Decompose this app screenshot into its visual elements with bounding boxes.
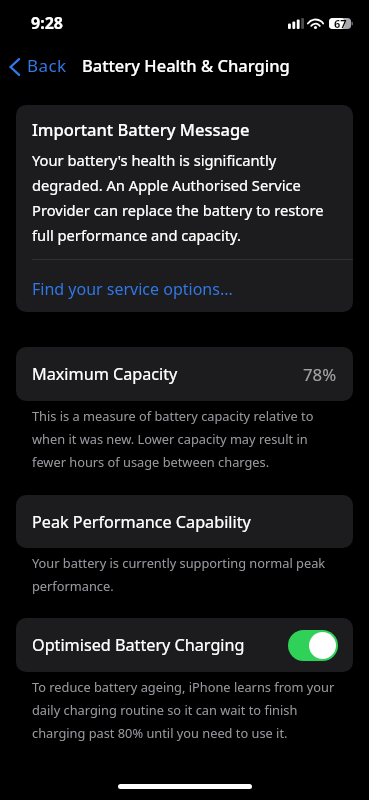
button[interactable]: Find your service options... — [16, 260, 353, 312]
button[interactable]: Optimised Battery Charging — [16, 618, 353, 672]
staticText: Important Battery Message — [32, 118, 250, 140]
button[interactable]: Peak Performance Capability — [16, 495, 353, 548]
staticText: Your battery's health is significantly d… — [32, 150, 337, 245]
staticText: Maximum Capacity — [32, 363, 178, 385]
staticText: Your battery is currently supporting nor… — [32, 554, 341, 594]
button[interactable]: Maximum Capacity — [16, 347, 353, 401]
staticText: 9:28 — [31, 12, 63, 34]
staticText: Battery Health & Charging — [82, 54, 290, 76]
staticText: Back — [27, 54, 67, 77]
staticText: 78% — [303, 363, 337, 386]
button[interactable]: Optimised Battery Charging toggle — [288, 630, 338, 661]
staticText: 67 — [334, 16, 347, 31]
staticText: Find your service options... — [32, 278, 233, 300]
staticText: This is a measure of battery capacity re… — [32, 407, 341, 470]
staticText: Optimised Battery Charging — [32, 634, 245, 656]
staticText: Peak Performance Capability — [32, 511, 251, 533]
button[interactable]: Back — [0, 51, 77, 82]
staticText: To reduce battery ageing, iPhone learns … — [32, 678, 341, 741]
